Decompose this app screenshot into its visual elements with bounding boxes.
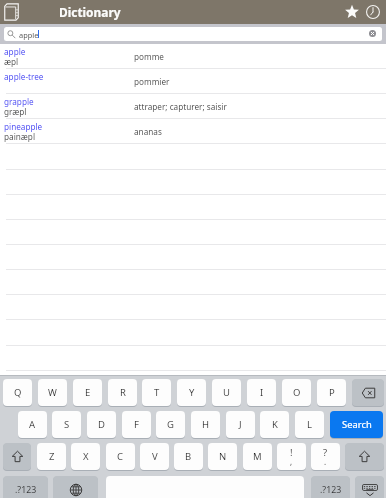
staticText: W: [48, 386, 57, 399]
staticText: attraper; capturer; saisir: [134, 101, 227, 112]
button[interactable]: Search: [330, 411, 383, 438]
staticText: O: [293, 386, 301, 399]
button[interactable]: .?123: [3, 476, 48, 498]
staticText: Z: [49, 450, 55, 463]
staticText: F: [134, 418, 139, 431]
button[interactable]: !: [277, 443, 306, 470]
button[interactable]: grapple: [0, 94, 386, 119]
staticText: !: [290, 446, 293, 459]
staticText: P: [329, 386, 335, 399]
staticText: R: [120, 386, 126, 399]
staticText: .?123: [320, 484, 342, 496]
staticText: Y: [189, 386, 195, 399]
staticText: S: [64, 418, 70, 431]
button[interactable]: G: [156, 411, 185, 438]
button[interactable]: E: [73, 379, 102, 406]
staticText: V: [152, 450, 158, 463]
staticText: apple-tree: [4, 71, 44, 82]
button[interactable]: D: [87, 411, 116, 438]
button[interactable]: X: [71, 443, 100, 470]
staticText: N: [219, 450, 227, 463]
button[interactable]: U: [212, 379, 241, 406]
staticText: Search: [342, 418, 372, 431]
staticText: .?123: [15, 484, 37, 496]
button[interactable]: T: [142, 379, 171, 406]
button[interactable]: F: [122, 411, 151, 438]
staticText: pomme: [134, 51, 164, 62]
staticText: apple: [19, 30, 39, 40]
button[interactable]: Y: [177, 379, 206, 406]
button[interactable]: Change keyboard: [53, 476, 98, 498]
staticText: pommier: [134, 76, 170, 87]
staticText: A: [29, 418, 36, 431]
staticText: ?: [323, 446, 328, 459]
staticText: B: [185, 450, 192, 463]
staticText: pineapple: [4, 121, 43, 132]
staticText: painæpl: [4, 131, 36, 142]
button[interactable]: Backspace: [352, 379, 384, 406]
button[interactable]: apple: [4, 27, 382, 41]
staticText: G: [167, 418, 174, 431]
button[interactable]: Favorites: [345, 5, 359, 18]
button[interactable]: H: [191, 411, 220, 438]
staticText: J: [239, 418, 242, 431]
staticText: I: [260, 386, 264, 399]
button[interactable]: O: [282, 379, 311, 406]
staticText: D: [98, 418, 105, 431]
button[interactable]: Hide keyboard: [355, 476, 384, 498]
button[interactable]: A: [18, 411, 47, 438]
staticText: T: [154, 386, 160, 399]
button[interactable]: Shift: [3, 443, 31, 470]
staticText: apple: [4, 46, 26, 57]
staticText: Q: [14, 386, 22, 399]
button[interactable]: .?123: [311, 476, 350, 498]
staticText: K: [272, 418, 278, 431]
staticText: C: [117, 450, 124, 463]
button[interactable]: pineapple: [0, 119, 386, 144]
button[interactable]: Q: [3, 379, 32, 406]
button[interactable]: B: [174, 443, 203, 470]
staticText: E: [85, 386, 91, 399]
button[interactable]: N: [208, 443, 237, 470]
button[interactable]: Clear text: [369, 30, 376, 37]
button[interactable]: apple-tree: [0, 69, 386, 94]
button[interactable]: S: [52, 411, 81, 438]
button[interactable]: P: [317, 379, 346, 406]
button[interactable]: C: [106, 443, 135, 470]
button[interactable]: History: [366, 5, 380, 19]
staticText: X: [83, 450, 89, 463]
staticText: ananas: [134, 126, 162, 137]
button[interactable]: Z: [37, 443, 66, 470]
button[interactable]: W: [38, 379, 67, 406]
staticText: græpl: [4, 106, 27, 117]
button[interactable]: apple: [0, 44, 386, 69]
staticText: Dictionary: [59, 4, 121, 20]
button[interactable]: L: [295, 411, 324, 438]
button[interactable]: V: [140, 443, 169, 470]
button[interactable]: ?: [311, 443, 340, 470]
staticText: grapple: [4, 96, 34, 107]
button[interactable]: R: [108, 379, 137, 406]
staticText: ,: [290, 456, 293, 467]
button[interactable]: J: [226, 411, 255, 438]
staticText: L: [307, 418, 312, 431]
staticText: æpl: [4, 56, 19, 67]
button[interactable]: I: [247, 379, 276, 406]
button[interactable]: Shift: [345, 443, 384, 470]
button[interactable]: K: [260, 411, 289, 438]
button[interactable]: M: [243, 443, 272, 470]
staticText: .: [324, 456, 327, 467]
staticText: H: [202, 418, 210, 431]
staticText: U: [223, 386, 230, 399]
button[interactable]: Dictionary: [4, 3, 19, 21]
staticText: M: [253, 450, 262, 463]
